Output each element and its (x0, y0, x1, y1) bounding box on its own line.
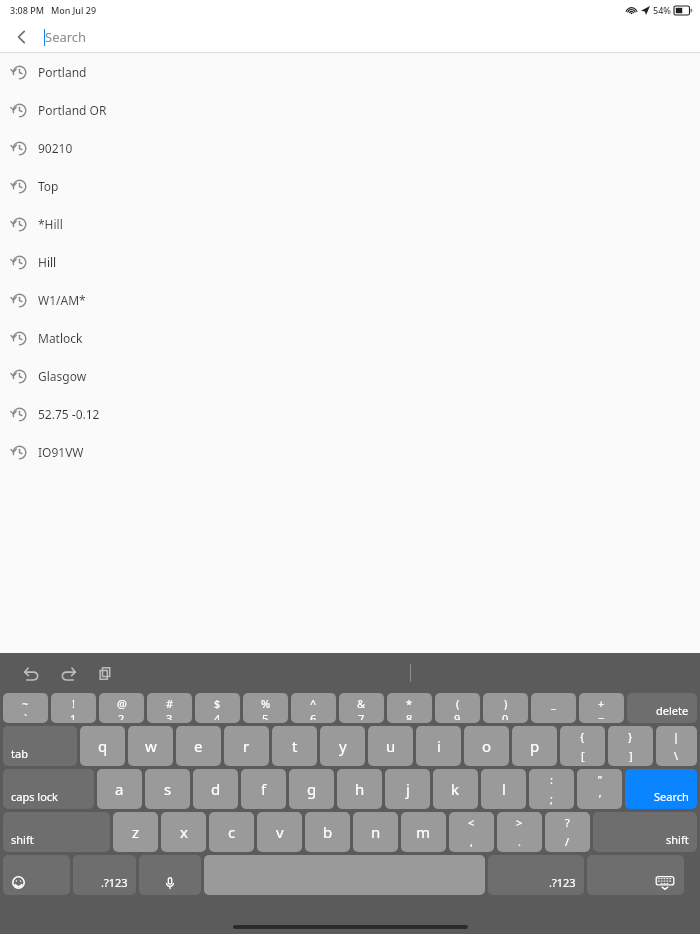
button[interactable]: Search (625, 769, 697, 809)
button[interactable]: .?123 (488, 855, 584, 895)
button[interactable]: IO91VW (0, 433, 700, 471)
staticText: l (502, 779, 506, 799)
button[interactable]: n (353, 812, 398, 852)
staticText: ; (550, 791, 553, 806)
staticText: 4 (214, 711, 221, 720)
button[interactable]: q (80, 726, 125, 766)
button[interactable]: # (147, 693, 192, 723)
button[interactable]: shift (3, 812, 110, 852)
staticText: s (164, 779, 172, 799)
button[interactable]: k (433, 769, 478, 809)
button[interactable]: t (272, 726, 317, 766)
button[interactable]: | (656, 726, 697, 766)
button[interactable]: v (257, 812, 302, 852)
staticText: # (166, 696, 174, 711)
button[interactable]: z (113, 812, 158, 852)
button[interactable]: b (305, 812, 350, 852)
button[interactable]: h (337, 769, 382, 809)
staticText: g (307, 779, 317, 799)
staticText: / (565, 834, 570, 849)
button[interactable]: tab (3, 726, 77, 766)
staticText: d (211, 779, 221, 799)
button[interactable]: _ (531, 693, 576, 723)
button[interactable]: Top (0, 167, 700, 205)
staticText: { (580, 729, 585, 744)
button[interactable]: > (497, 812, 542, 852)
button[interactable]: ~ (3, 693, 48, 723)
button[interactable]: l (481, 769, 526, 809)
button[interactable]: { (560, 726, 605, 766)
button[interactable]: Clipboard (88, 656, 122, 690)
button[interactable]: * (387, 693, 432, 723)
button[interactable]: 52.75 -0.12 (0, 395, 700, 433)
staticText: m (416, 822, 431, 842)
button[interactable]: @ (99, 693, 144, 723)
button[interactable]: ” (577, 769, 622, 809)
button[interactable]: + (579, 693, 624, 723)
staticText: @ (117, 696, 127, 711)
button[interactable]: .?123 (73, 855, 136, 895)
staticText: 3 (166, 711, 173, 720)
button[interactable]: ! (51, 693, 96, 723)
button[interactable]: Portland (0, 53, 700, 91)
button[interactable]: *Hill (0, 205, 700, 243)
button[interactable]: e (176, 726, 221, 766)
button[interactable]: < (449, 812, 494, 852)
staticText: IO91VW (38, 444, 84, 460)
button[interactable]: a (97, 769, 142, 809)
button[interactable]: p (512, 726, 557, 766)
button[interactable]: : (529, 769, 574, 809)
button[interactable]: W1/AM* (0, 281, 700, 319)
button[interactable]: delete (627, 693, 697, 723)
button[interactable]: d (193, 769, 238, 809)
staticText: ! (72, 696, 75, 711)
staticText: * (406, 696, 413, 711)
button[interactable]: Hide keyboard (587, 855, 684, 895)
button[interactable]: Search (44, 20, 700, 53)
button[interactable]: 90210 (0, 129, 700, 167)
button[interactable]: ^ (291, 693, 336, 723)
button[interactable]: j (385, 769, 430, 809)
button[interactable]: caps lock (3, 769, 94, 809)
button[interactable]: Hill (0, 243, 700, 281)
button[interactable]: x (161, 812, 206, 852)
button[interactable]: Portland OR (0, 91, 700, 129)
staticText: ) (504, 696, 508, 711)
button[interactable]: Voice input (139, 855, 201, 895)
button[interactable]: Back (0, 20, 44, 53)
button[interactable]: y (320, 726, 365, 766)
staticText: < (468, 815, 475, 830)
staticText: Search (45, 28, 87, 46)
button[interactable]: i (416, 726, 461, 766)
button[interactable]: ) (483, 693, 528, 723)
staticText: *Hill (38, 216, 63, 232)
button[interactable]: Redo (51, 656, 85, 690)
button[interactable]: m (401, 812, 446, 852)
button[interactable]: g (289, 769, 334, 809)
button[interactable]: w (128, 726, 173, 766)
button[interactable]: Glasgow (0, 357, 700, 395)
button[interactable]: & (339, 693, 384, 723)
button[interactable]: ? (545, 812, 590, 852)
button[interactable]: r (224, 726, 269, 766)
button[interactable]: $ (195, 693, 240, 723)
button[interactable]: f (241, 769, 286, 809)
button[interactable]: o (464, 726, 509, 766)
button[interactable]: c (209, 812, 254, 852)
button[interactable]: % (243, 693, 288, 723)
staticText: 5 (262, 711, 269, 720)
button[interactable]: u (368, 726, 413, 766)
button[interactable]: Undo (14, 656, 48, 690)
staticText: W1/AM* (38, 292, 86, 308)
staticText: k (451, 779, 460, 799)
button[interactable]: s (145, 769, 190, 809)
staticText: Portland (38, 64, 87, 80)
button[interactable]: shift (593, 812, 697, 852)
button[interactable]: } (608, 726, 653, 766)
button[interactable]: Emoji (3, 855, 70, 895)
staticText: v (276, 822, 284, 842)
button[interactable]: ( (435, 693, 480, 723)
button[interactable]: Matlock (0, 319, 700, 357)
